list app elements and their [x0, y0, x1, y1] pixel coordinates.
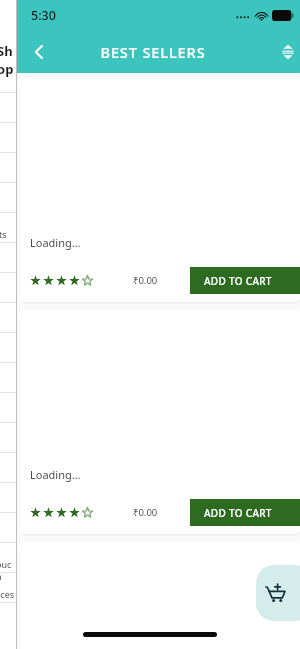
staticText: Loading... [30, 235, 81, 250]
staticText: ouch [0, 558, 15, 582]
button[interactable]: ADD TO CART [190, 499, 300, 526]
staticText: 5:30 [31, 7, 56, 24]
staticText: Its [0, 228, 7, 240]
staticText: ₹0.00 [133, 506, 158, 519]
staticText: Loading... [30, 467, 81, 482]
button[interactable]: Loading... [20, 310, 300, 534]
button[interactable]: Cart [256, 565, 300, 621]
button[interactable]: Loading... [20, 78, 300, 302]
staticText: ₹0.00 [133, 274, 158, 287]
staticText: Shop [0, 42, 16, 78]
staticText: cces [0, 588, 15, 600]
button[interactable]: Sort [266, 30, 300, 73]
button[interactable]: Back [17, 30, 61, 73]
staticText: ADD TO CART [204, 506, 272, 520]
button[interactable]: ADD TO CART [190, 267, 300, 294]
button[interactable] [20, 542, 300, 649]
staticText: BEST SELLERS [100, 42, 206, 62]
staticText: ADD TO CART [204, 274, 272, 288]
